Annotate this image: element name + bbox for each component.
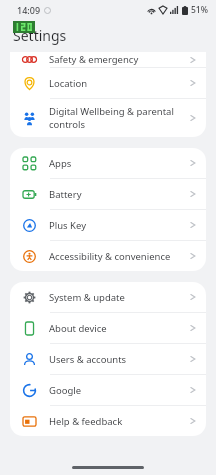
button[interactable]: Google: [10, 375, 206, 405]
staticText: Settings: [13, 26, 67, 45]
button[interactable]: Help & feedback: [10, 406, 206, 436]
button[interactable]: Safety & emergency: [10, 52, 206, 67]
button[interactable]: Users & accounts: [10, 344, 206, 374]
staticText: Location: [49, 77, 186, 90]
staticText: 51%: [191, 4, 208, 16]
button[interactable]: About device: [10, 313, 206, 343]
button[interactable]: Accessibility & convenience: [10, 241, 206, 271]
staticText: About device: [49, 322, 186, 335]
button[interactable]: System & update: [10, 282, 206, 312]
staticText: Google: [49, 384, 186, 397]
staticText: Help & feedback: [49, 415, 186, 428]
staticText: Battery: [49, 188, 186, 201]
staticText: Plus Key: [49, 219, 186, 232]
staticText: 14:09: [17, 4, 41, 16]
button[interactable]: Digital Wellbeing & parental controls: [10, 99, 206, 137]
staticText: Accessibility & convenience: [49, 250, 186, 263]
staticText: Users & accounts: [49, 353, 186, 366]
button[interactable]: Battery: [10, 179, 206, 209]
button[interactable]: Apps: [10, 148, 206, 178]
staticText: Safety & emergency: [49, 53, 186, 66]
button[interactable]: Location: [10, 68, 206, 98]
staticText: Apps: [49, 157, 186, 170]
button[interactable]: Plus Key: [10, 210, 206, 240]
staticText: System & update: [49, 291, 186, 304]
staticText: Digital Wellbeing & parental controls: [49, 105, 186, 131]
